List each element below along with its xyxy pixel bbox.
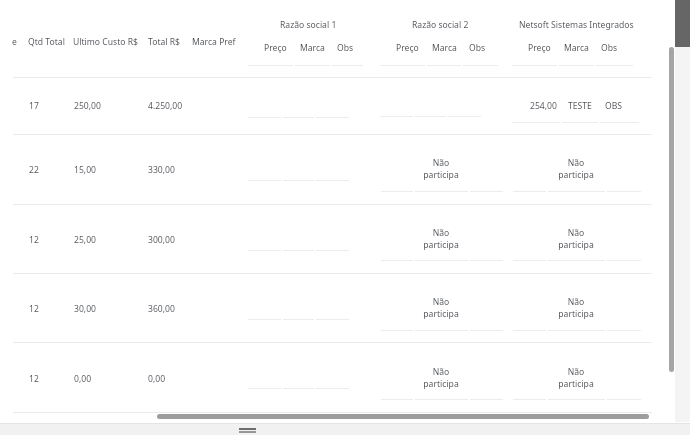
button[interactable]: Horizontal scrollbar (157, 414, 649, 419)
staticText: Não participa (416, 296, 466, 320)
staticText: 12 (29, 303, 39, 315)
staticText: 22 (29, 164, 39, 176)
staticText: 4.250,00 (148, 100, 183, 112)
staticText: Preço (396, 42, 419, 54)
staticText: Não participa (551, 227, 601, 251)
staticText: 12 (29, 373, 39, 385)
staticText: 0,00 (74, 373, 92, 385)
staticText: OBS (605, 100, 623, 112)
button[interactable]: Não participa (551, 227, 601, 251)
staticText: TESTE (568, 100, 592, 112)
button[interactable]: Product row (0, 205, 675, 273)
staticText: Marca (300, 42, 325, 54)
button[interactable]: Product row (0, 344, 675, 412)
button[interactable]: Total R$ (144, 30, 188, 48)
staticText: Não participa (551, 366, 601, 390)
staticText: Marca Pref (192, 36, 236, 48)
staticText: Ultimo Custo R$ (73, 36, 138, 48)
staticText: Preço (264, 42, 287, 54)
button[interactable]: Não participa (551, 366, 601, 390)
button[interactable]: Product row (0, 275, 675, 343)
staticText: Marca (564, 42, 589, 54)
staticText: Razão social 2 (412, 19, 469, 31)
button[interactable]: Não participa (416, 227, 466, 251)
button[interactable]: Ultimo Custo R$ (69, 30, 143, 48)
button[interactable]: Razão social 2 (408, 13, 465, 27)
staticText: 12 (29, 234, 39, 246)
button[interactable]: Resize panel handle (234, 423, 261, 435)
staticText: 254,00 (530, 100, 557, 112)
staticText: Obs (469, 42, 486, 54)
staticText: Qtd Total (28, 36, 65, 48)
staticText: Razão social 1 (280, 19, 337, 31)
staticText: Preço (528, 42, 551, 54)
staticText: Não participa (416, 366, 466, 390)
staticText: 17 (29, 100, 39, 112)
button[interactable]: Marca Pref (188, 30, 242, 48)
button[interactable]: Vertical scrollbar (669, 47, 674, 372)
button[interactable]: Marca (296, 38, 321, 54)
staticText: Obs (337, 42, 354, 54)
button[interactable]: Netsoft Sistemas Integrados (515, 13, 630, 27)
button[interactable]: Marca (428, 38, 453, 54)
staticText: e (12, 36, 17, 48)
button[interactable]: Obs (333, 38, 350, 54)
staticText: Não participa (416, 157, 466, 181)
staticText: Netsoft Sistemas Integrados (519, 19, 634, 31)
button[interactable]: Obs (597, 38, 614, 54)
staticText: 0,00 (148, 373, 166, 385)
staticText: Não participa (551, 296, 601, 320)
button[interactable]: Product row (0, 136, 675, 204)
staticText: 25,00 (74, 234, 96, 246)
button[interactable]: Preço (392, 38, 415, 54)
button[interactable]: Razão social 1 (276, 13, 333, 27)
button[interactable]: Qtd Total (24, 30, 68, 48)
button[interactable]: Não participa (416, 366, 466, 390)
staticText: 15,00 (74, 164, 96, 176)
staticText: Obs (601, 42, 618, 54)
staticText: Total R$ (148, 36, 181, 48)
staticText: 360,00 (148, 303, 175, 315)
staticText: 300,00 (148, 234, 175, 246)
button[interactable]: Não participa (416, 296, 466, 320)
button[interactable]: Preço (260, 38, 283, 54)
button[interactable]: Marca (560, 38, 585, 54)
staticText: Não participa (416, 227, 466, 251)
staticText: 30,00 (74, 303, 96, 315)
button[interactable]: Não participa (551, 157, 601, 181)
button[interactable]: Preço (524, 38, 547, 54)
staticText: 330,00 (148, 164, 175, 176)
button[interactable]: Não participa (551, 296, 601, 320)
button[interactable]: Não participa (416, 157, 466, 181)
staticText: 250,00 (74, 100, 101, 112)
staticText: Não participa (551, 157, 601, 181)
button[interactable]: Obs (465, 38, 482, 54)
staticText: Marca (432, 42, 457, 54)
button[interactable]: Product row (0, 77, 675, 134)
button[interactable]: e (8, 30, 22, 48)
